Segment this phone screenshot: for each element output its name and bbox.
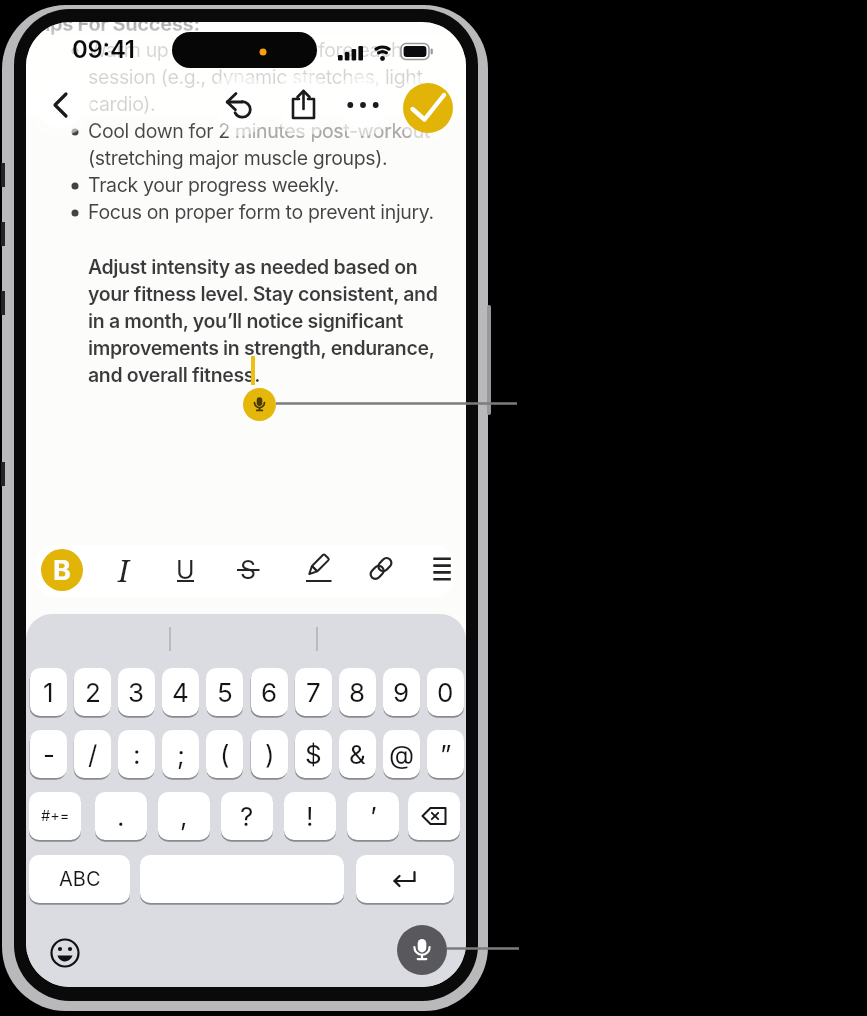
staticText: ;	[177, 739, 185, 770]
button[interactable]: 0	[427, 668, 464, 716]
staticText: 4	[172, 677, 189, 708]
button[interactable]: @	[383, 730, 420, 778]
staticText: improvements in strength, endurance,	[88, 336, 435, 360]
button[interactable]: )	[251, 730, 288, 778]
staticText: 9	[393, 677, 410, 708]
button[interactable]: ”	[427, 730, 464, 778]
button[interactable]: 7	[295, 668, 332, 716]
staticText: 0	[437, 677, 454, 708]
staticText: U	[176, 555, 195, 585]
button[interactable]	[397, 925, 447, 975]
button[interactable]: ;	[162, 730, 199, 778]
button[interactable]: &	[339, 730, 376, 778]
button[interactable]: $	[295, 730, 332, 778]
staticText: 5	[217, 677, 233, 708]
staticText: Adjust intensity as needed based on	[88, 255, 418, 279]
staticText: -	[43, 739, 55, 770]
button[interactable]	[37, 82, 83, 128]
button[interactable]: 8	[339, 668, 376, 716]
button[interactable]	[243, 388, 276, 421]
staticText: .	[117, 801, 125, 832]
staticText: ’	[370, 801, 377, 832]
button[interactable]	[48, 936, 82, 970]
button[interactable]: S	[226, 544, 270, 596]
button[interactable]: U	[163, 544, 207, 596]
button[interactable]	[359, 544, 403, 596]
staticText: Cool down for 2 minutes post-workout	[88, 119, 430, 143]
button[interactable]	[408, 792, 460, 840]
staticText: Track your progress weekly.	[88, 173, 339, 197]
button[interactable]: .	[95, 792, 147, 840]
button[interactable]	[340, 82, 386, 128]
staticText: in a month, you’ll notice significant	[88, 309, 404, 333]
button[interactable]: 6	[251, 668, 288, 716]
staticText: Focus on proper form to prevent injury.	[88, 200, 434, 224]
staticText: Warm up for 5 minutes before each	[88, 38, 403, 62]
button[interactable]	[280, 82, 326, 128]
staticText: $	[305, 739, 322, 770]
button[interactable]	[216, 82, 262, 128]
staticText: &	[349, 739, 366, 770]
button[interactable]: ,	[158, 792, 210, 840]
button[interactable]	[403, 83, 453, 133]
button[interactable]: 5	[206, 668, 243, 716]
staticText: and overall fitness.	[88, 363, 260, 387]
button[interactable]	[356, 855, 454, 903]
staticText: S	[240, 555, 257, 585]
staticText: !	[306, 801, 314, 832]
staticText: ”	[440, 739, 452, 770]
button[interactable]: 3	[118, 668, 155, 716]
staticText: ABC	[59, 867, 101, 891]
button[interactable]: ?	[221, 792, 273, 840]
staticText: Tips For Success:	[32, 22, 200, 36]
staticText: ,	[180, 801, 188, 832]
staticText: B	[53, 554, 71, 587]
staticText: your fitness level. Stay consistent, and	[88, 282, 438, 306]
staticText: I	[118, 550, 130, 591]
button[interactable]: /	[74, 730, 111, 778]
staticText: (	[220, 739, 230, 770]
staticText: session (e.g., dynamic stretches, light	[88, 65, 423, 89]
staticText: 3	[128, 677, 145, 708]
staticText: :	[133, 739, 141, 770]
staticText: 2	[85, 677, 101, 708]
button[interactable]: (	[206, 730, 243, 778]
staticText: 6	[261, 677, 278, 708]
button[interactable]: -	[30, 730, 67, 778]
staticText: 8	[349, 677, 366, 708]
staticText: ?	[240, 801, 254, 832]
button[interactable]: I	[102, 544, 146, 596]
staticText: 7	[306, 677, 321, 708]
staticText: #+=	[41, 807, 70, 825]
button[interactable]: :	[118, 730, 155, 778]
button[interactable]: ABC	[29, 855, 130, 903]
staticText: )	[265, 739, 275, 770]
button[interactable]: 2	[74, 668, 111, 716]
staticText: /	[88, 739, 98, 770]
button[interactable]: 9	[383, 668, 420, 716]
staticText: (stretching major muscle groups).	[88, 146, 388, 170]
button[interactable]: !	[284, 792, 336, 840]
button[interactable]	[140, 855, 344, 903]
button[interactable]	[420, 544, 464, 596]
button[interactable]	[296, 544, 340, 596]
button[interactable]: ’	[347, 792, 399, 840]
button[interactable]: 4	[162, 668, 199, 716]
staticText: 09:41	[72, 35, 135, 64]
button[interactable]: #+=	[29, 792, 81, 840]
staticText: cardio).	[88, 92, 156, 116]
button[interactable]: B	[41, 549, 83, 591]
staticText: 1	[43, 677, 54, 708]
button[interactable]: 1	[30, 668, 67, 716]
staticText: @	[389, 739, 415, 770]
